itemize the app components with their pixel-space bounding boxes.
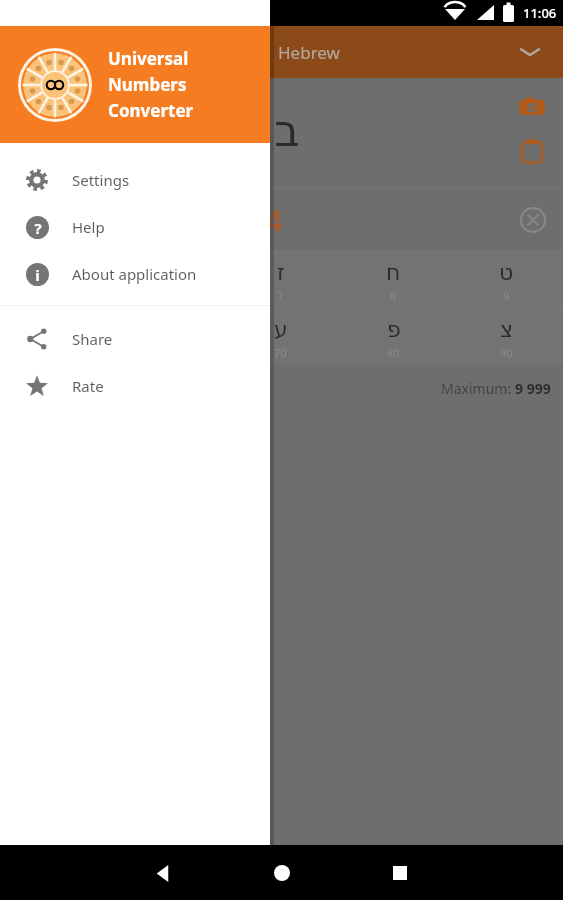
staticText: 11:06 [523, 4, 557, 22]
button[interactable]: ? [0, 203, 270, 250]
staticText: צ [500, 317, 514, 343]
button[interactable]: ז [224, 251, 337, 308]
staticText: ח [386, 260, 401, 286]
staticText: 9 999 [515, 379, 551, 398]
staticText: i [35, 265, 40, 285]
button[interactable]: Recent apps [385, 858, 415, 888]
staticText: 90 [500, 345, 513, 360]
staticText: ו [165, 260, 171, 286]
staticText: Hebrew [278, 41, 340, 64]
staticText: 80 [387, 345, 400, 360]
staticText: 70 [274, 345, 287, 360]
staticText: Settings [72, 170, 130, 190]
staticText: 7 [277, 288, 284, 303]
staticText: Converter [108, 99, 194, 122]
staticText: About application [72, 264, 197, 284]
button[interactable]: Rate [0, 362, 270, 409]
button[interactable]: Paste from clipboard [517, 136, 547, 166]
button[interactable]: Settings [0, 156, 270, 203]
button[interactable]: Back [148, 858, 178, 888]
staticText: Share [72, 329, 113, 349]
button[interactable]: ט [450, 251, 563, 308]
button[interactable]: פ [337, 308, 450, 365]
staticText: Help [72, 217, 105, 237]
button[interactable]: Clear [519, 206, 547, 234]
staticText: 8 [390, 288, 397, 303]
button[interactable]: ע [224, 308, 337, 365]
staticText: ע [274, 317, 288, 343]
staticText: ז [277, 260, 285, 286]
button[interactable]: ו [112, 251, 224, 308]
button[interactable]: Home [267, 858, 297, 888]
button[interactable]: נ [0, 308, 112, 365]
button[interactable]: צ [450, 308, 563, 365]
staticText: ב׳ [256, 105, 300, 156]
staticText: Numbers [108, 73, 187, 96]
staticText: ? [34, 218, 42, 238]
button[interactable]: Camera [517, 92, 547, 122]
staticText: Universal [108, 47, 189, 70]
staticText: ט [499, 260, 514, 286]
staticText: 34 [248, 200, 283, 241]
button[interactable]: ה [0, 251, 112, 308]
staticText: Maximum: [441, 379, 515, 398]
button[interactable]: Share [0, 315, 270, 362]
button[interactable]: ח [337, 251, 450, 308]
button[interactable]: i [0, 250, 270, 297]
button[interactable]: Hebrew [0, 26, 563, 78]
staticText: 9 [503, 288, 510, 303]
staticText: Rate [72, 376, 104, 396]
staticText: פ [387, 317, 401, 343]
